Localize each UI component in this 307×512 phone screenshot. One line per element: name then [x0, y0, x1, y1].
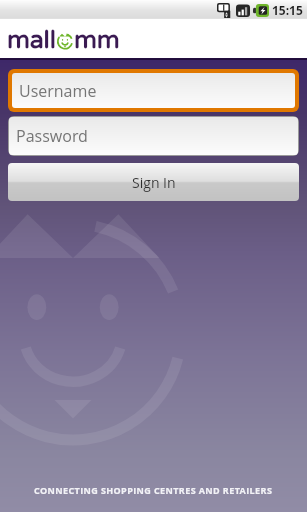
button[interactable]: Password — [9, 117, 298, 155]
button[interactable]: Sign In — [8, 163, 299, 201]
staticText: Username — [19, 80, 97, 102]
staticText: mm — [74, 25, 120, 55]
staticText: Password — [16, 125, 88, 147]
staticText: CONNECTING SHOPPING CENTRES AND RETAILER… — [34, 484, 273, 496]
staticText: mall — [7, 25, 56, 55]
button[interactable]: Username — [12, 73, 295, 108]
staticText: 15:15 — [272, 2, 303, 18]
staticText: Sign In — [132, 173, 176, 192]
